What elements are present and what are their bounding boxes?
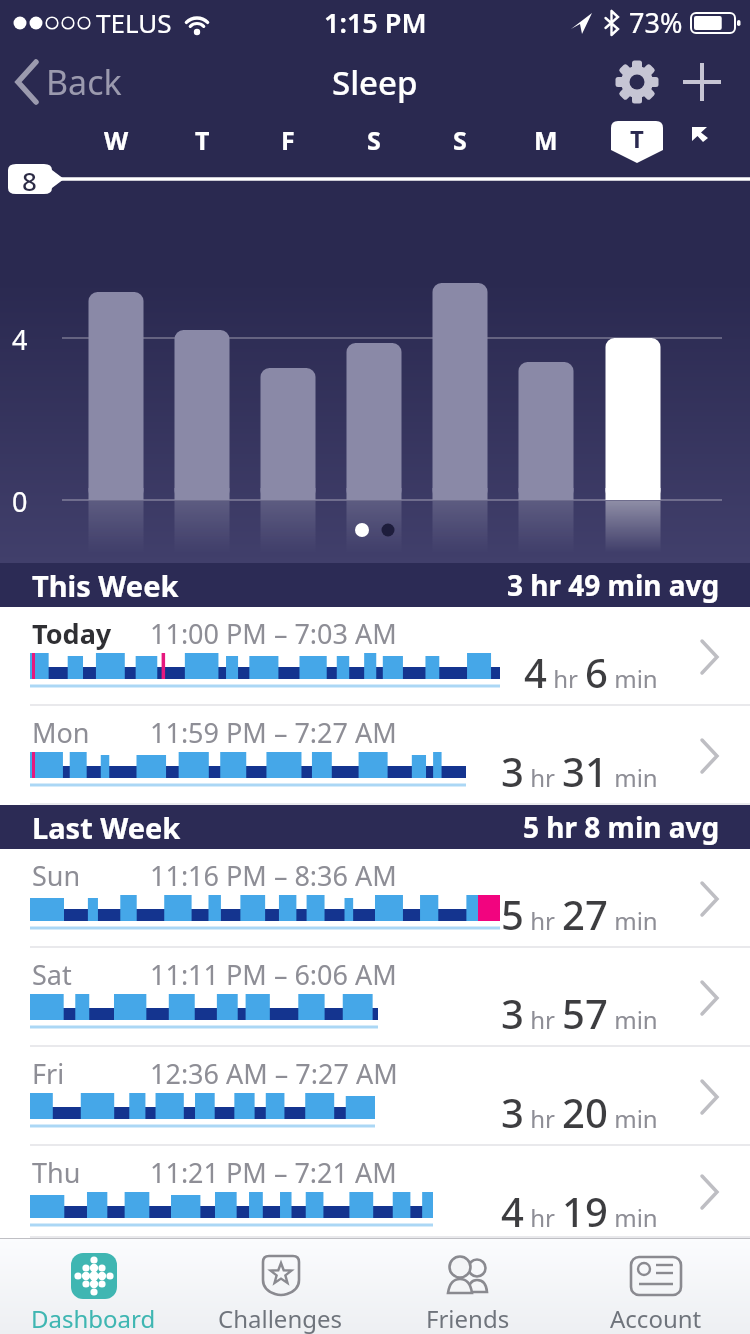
staticText: Today: [32, 615, 112, 652]
staticText: W: [104, 123, 129, 157]
staticText: 3: [501, 986, 524, 1040]
button[interactable]: Fri: [0, 1047, 750, 1146]
staticText: hr: [547, 662, 585, 695]
staticText: 0: [12, 483, 28, 520]
staticText: Thu: [32, 1154, 81, 1191]
staticText: Last Week: [32, 808, 181, 847]
staticText: 3: [501, 744, 524, 798]
staticText: Challenges: [218, 1302, 343, 1334]
button[interactable]: Dashboard: [0, 1238, 187, 1334]
button[interactable]: S: [440, 120, 480, 160]
staticText: hr: [524, 1201, 562, 1234]
button[interactable]: Sat: [0, 948, 750, 1047]
button[interactable]: M: [526, 120, 566, 160]
staticText: 31: [562, 744, 608, 798]
staticText: 11:16 PM – 8:36 AM: [150, 857, 397, 894]
staticText: 4: [524, 645, 547, 699]
button[interactable]: T: [611, 121, 663, 163]
staticText: Mon: [32, 714, 90, 751]
staticText: 4: [501, 1184, 524, 1238]
staticText: 5: [501, 887, 524, 941]
staticText: Fri: [32, 1055, 65, 1092]
staticText: hr: [524, 904, 562, 937]
button[interactable]: Back: [14, 59, 122, 105]
button[interactable]: Account: [562, 1238, 750, 1334]
staticText: T: [195, 123, 210, 157]
staticText: min: [608, 761, 658, 794]
staticText: S: [453, 123, 467, 157]
button[interactable]: Sun: [0, 849, 750, 948]
staticText: 57: [562, 986, 608, 1040]
staticText: T: [630, 122, 644, 155]
staticText: 11:11 PM – 6:06 AM: [150, 956, 397, 993]
button[interactable]: [691, 126, 713, 144]
button[interactable]: Today: [0, 607, 750, 706]
staticText: 20: [562, 1085, 608, 1139]
staticText: Sat: [32, 956, 72, 993]
staticText: Sleep: [332, 60, 418, 105]
staticText: 11:21 PM – 7:21 AM: [150, 1154, 397, 1191]
staticText: min: [608, 904, 658, 937]
button[interactable]: Friends: [374, 1238, 562, 1334]
staticText: hr: [524, 1102, 562, 1135]
staticText: 11:59 PM – 7:27 AM: [150, 714, 397, 751]
staticText: 5 hr 8 min avg: [523, 808, 720, 846]
staticText: 11:00 PM – 7:03 AM: [150, 615, 397, 652]
staticText: Sun: [32, 857, 81, 894]
staticText: Friends: [426, 1302, 510, 1334]
staticText: S: [367, 123, 381, 157]
staticText: Back: [46, 59, 122, 105]
staticText: hr: [524, 761, 562, 794]
button[interactable]: T: [182, 120, 222, 160]
staticText: min: [608, 662, 658, 695]
staticText: TELUS: [96, 5, 172, 40]
staticText: M: [534, 123, 558, 157]
staticText: 73%: [629, 4, 683, 41]
staticText: 1:15 PM: [324, 4, 427, 41]
staticText: 19: [562, 1184, 608, 1238]
staticText: F: [281, 123, 295, 157]
button[interactable]: [614, 59, 660, 105]
staticText: min: [608, 1201, 658, 1234]
staticText: 6: [585, 645, 608, 699]
button[interactable]: Thu: [0, 1146, 750, 1238]
staticText: hr: [524, 1003, 562, 1036]
button[interactable]: Challenges: [187, 1238, 374, 1334]
staticText: 3: [501, 1085, 524, 1139]
staticText: 3 hr 49 min avg: [507, 566, 720, 604]
button[interactable]: Mon: [0, 706, 750, 805]
staticText: 27: [562, 887, 608, 941]
staticText: This Week: [32, 566, 179, 605]
button[interactable]: F: [268, 120, 308, 160]
staticText: 8: [22, 163, 37, 198]
button[interactable]: S: [354, 120, 394, 160]
staticText: 12:36 AM – 7:27 AM: [150, 1055, 398, 1092]
button[interactable]: W: [96, 120, 136, 160]
staticText: Dashboard: [31, 1302, 156, 1334]
staticText: 4: [12, 321, 28, 358]
button[interactable]: [682, 62, 722, 102]
staticText: min: [608, 1003, 658, 1036]
staticText: Account: [610, 1302, 702, 1334]
staticText: min: [608, 1102, 658, 1135]
